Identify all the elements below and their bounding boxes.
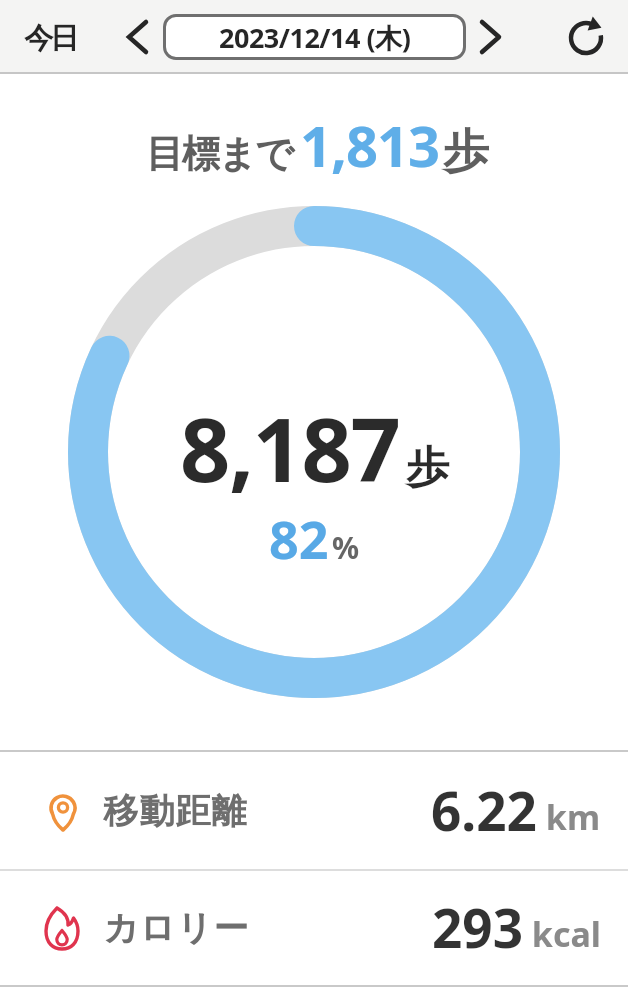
staticText: kcal xyxy=(523,911,601,957)
staticText: 目標まで xyxy=(146,126,300,178)
staticText: カロリー xyxy=(103,906,250,950)
button[interactable]: 今日 xyxy=(26,20,77,57)
button[interactable]: 2023/12/14 (木) xyxy=(163,14,466,60)
button[interactable] xyxy=(566,18,606,58)
staticText: 1,813 xyxy=(300,107,440,183)
staticText: 今日 xyxy=(26,20,77,57)
staticText: 6.22 xyxy=(431,774,537,846)
button[interactable] xyxy=(118,19,154,55)
staticText: 82 xyxy=(269,503,329,574)
staticText: 移動距離 xyxy=(103,789,247,833)
staticText: % xyxy=(332,527,360,568)
staticText: 8,187 xyxy=(180,388,400,508)
staticText: km xyxy=(537,794,601,840)
button[interactable]: カロリー xyxy=(0,871,628,985)
staticText: 293 xyxy=(432,891,523,963)
button[interactable]: 移動距離 xyxy=(0,752,628,869)
staticText: 2023/12/14 (木) xyxy=(219,19,411,56)
button[interactable] xyxy=(474,19,510,55)
staticText: 歩 xyxy=(443,123,489,181)
staticText: 歩 xyxy=(406,441,449,495)
